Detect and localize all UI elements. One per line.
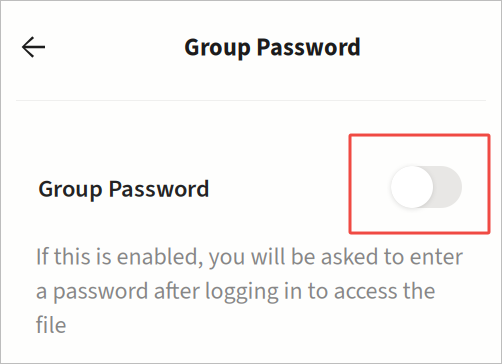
staticText: Group Password <box>184 31 361 65</box>
button[interactable]: Back <box>10 22 57 72</box>
staticText: Group Password <box>38 171 210 206</box>
button[interactable]: Group Password <box>0 161 502 217</box>
staticText: If this is enabled, you will be asked to… <box>36 240 463 342</box>
